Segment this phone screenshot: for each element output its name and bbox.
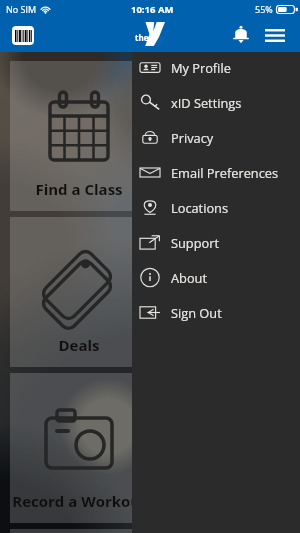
button[interactable]: Events xyxy=(10,529,148,533)
button[interactable]: Sign Out xyxy=(132,295,300,330)
staticText: 10:16 AM xyxy=(131,3,174,16)
staticText: Deals xyxy=(58,335,100,355)
button[interactable]: Schedule xyxy=(152,61,290,211)
button[interactable]: Deals xyxy=(10,217,148,367)
staticText: Find a Class xyxy=(35,179,123,199)
button[interactable]: Find a Class xyxy=(10,61,148,211)
button[interactable]: About xyxy=(132,260,300,295)
button[interactable]: My Profile xyxy=(132,50,300,85)
button[interactable]: Membership barcode xyxy=(12,26,34,45)
button[interactable]: Locations xyxy=(132,190,300,225)
button[interactable]: My Y xyxy=(152,217,290,367)
button[interactable]: Support xyxy=(132,225,300,260)
button[interactable]: Notifications xyxy=(229,18,258,52)
staticText: the xyxy=(135,32,149,43)
staticText: Record a Workout xyxy=(12,491,147,511)
staticText: Support xyxy=(171,234,220,251)
staticText: No SIM xyxy=(6,3,37,15)
staticText: Privacy xyxy=(171,129,214,146)
staticText: Sign Out xyxy=(171,304,222,321)
staticText: About xyxy=(171,269,208,286)
button[interactable]: xID Settings xyxy=(132,85,300,120)
staticText: xID Settings xyxy=(171,94,242,111)
staticText: 55% xyxy=(255,3,273,15)
button[interactable]: Email Preferences xyxy=(132,155,300,190)
staticText: Email Preferences xyxy=(171,164,279,181)
button[interactable]: Menu xyxy=(260,18,289,52)
button[interactable]: Record a Workout xyxy=(10,373,148,523)
button[interactable]: Privacy xyxy=(132,120,300,155)
staticText: Locations xyxy=(171,199,229,216)
staticText: My Profile xyxy=(171,59,231,76)
